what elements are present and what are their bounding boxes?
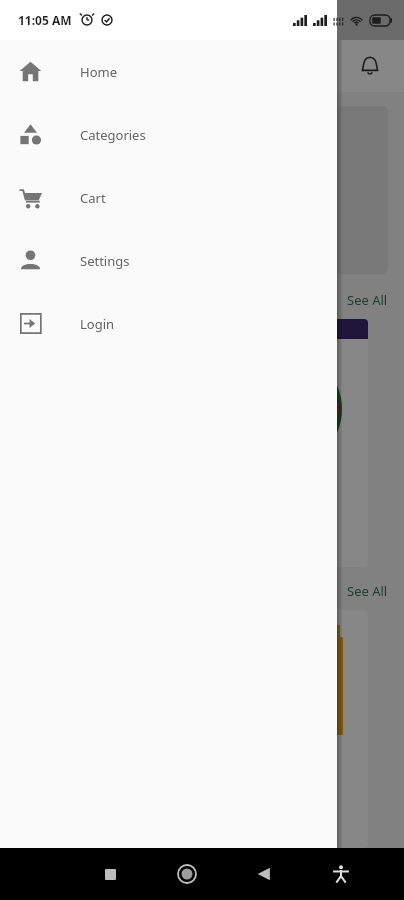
staticText: See All [347, 291, 388, 309]
staticText: Cart [80, 189, 106, 207]
staticText: Login [80, 315, 115, 333]
button[interactable]: Aachi Appalam [198, 319, 368, 567]
staticText: Home [80, 63, 117, 81]
button[interactable]: Back [244, 854, 284, 894]
button[interactable]: Categories [0, 103, 337, 166]
button[interactable]: Cart [0, 166, 337, 229]
button[interactable]: Settings [0, 229, 337, 292]
staticText: See All [347, 582, 388, 600]
button[interactable]: Notifications [360, 56, 380, 76]
button[interactable]: See All [347, 291, 388, 309]
button[interactable]: Home [167, 854, 207, 894]
button[interactable] [198, 610, 368, 848]
button[interactable] [16, 319, 186, 567]
button[interactable]: See All [347, 582, 388, 600]
staticText: 11:05 AM [18, 12, 72, 28]
staticText: Settings [80, 252, 130, 270]
button[interactable]: Accessibility [321, 854, 361, 894]
button[interactable]: Home [0, 40, 337, 103]
button[interactable]: Login [0, 292, 337, 355]
button[interactable]: Recent apps [90, 854, 130, 894]
staticText: Categories [80, 126, 146, 144]
